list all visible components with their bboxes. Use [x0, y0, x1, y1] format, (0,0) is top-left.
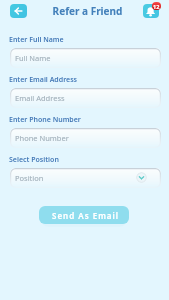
staticText: Select Position — [9, 155, 59, 165]
staticText: Enter Full Name — [9, 35, 64, 45]
button[interactable]: Position — [10, 168, 161, 188]
staticText: Position — [15, 173, 44, 183]
button[interactable]: Email Address — [10, 88, 161, 108]
staticText: Refer a Friend — [3, 4, 169, 18]
staticText: 12 — [153, 3, 160, 10]
button[interactable]: Notifications — [143, 4, 159, 18]
staticText: Send As Email — [52, 210, 120, 221]
button[interactable]: Back — [10, 4, 27, 18]
staticText: Full Name — [15, 53, 51, 63]
staticText: Email Address — [15, 93, 65, 103]
button[interactable]: Phone Number — [10, 128, 161, 148]
staticText: Enter Email Address — [9, 75, 78, 85]
staticText: Phone Number — [15, 133, 69, 143]
button[interactable]: Open position list — [136, 172, 147, 183]
staticText: Enter Phone Number — [9, 115, 81, 125]
button[interactable]: Send As Email — [39, 206, 129, 224]
button[interactable]: Full Name — [10, 48, 161, 68]
